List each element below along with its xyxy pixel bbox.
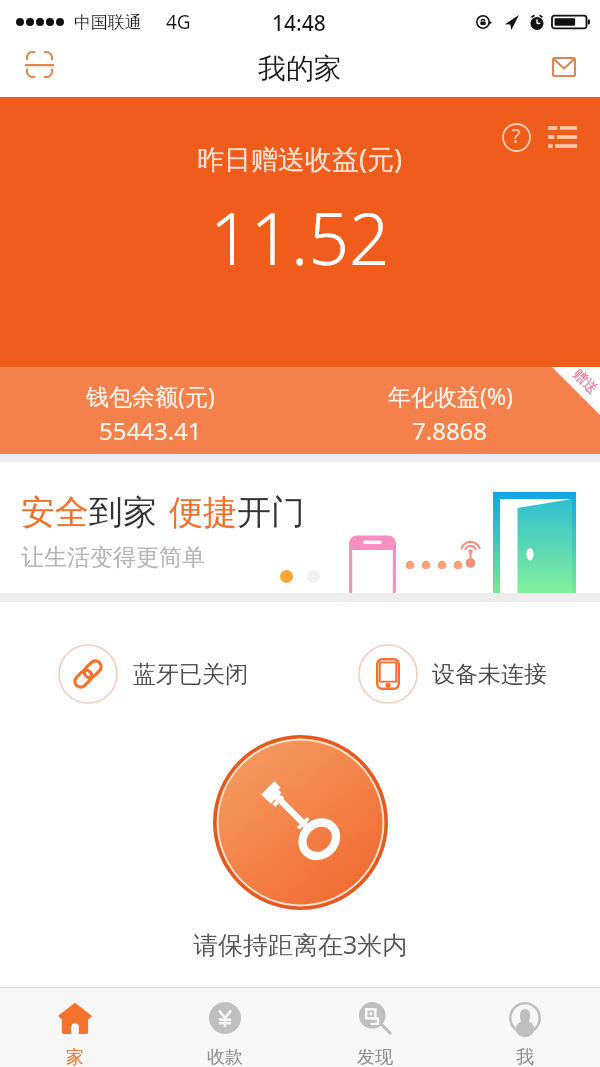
staticText: 中国联通	[74, 12, 142, 33]
staticText: 钱包余额(元)	[86, 380, 215, 411]
staticText: ?	[512, 123, 521, 149]
staticText: 设备未连接	[432, 660, 547, 689]
button[interactable]: 收款	[150, 988, 300, 1067]
staticText: 让生活变得更简单	[21, 543, 205, 572]
button[interactable]: Menu	[541, 116, 583, 158]
staticText: 便捷	[169, 491, 237, 534]
staticText: 发现	[357, 1046, 393, 1067]
staticText: 收款	[207, 1046, 243, 1067]
staticText: 7.8868	[412, 414, 488, 447]
button[interactable]: 我	[450, 988, 600, 1067]
button[interactable]: 家	[0, 988, 150, 1067]
staticText: 55443.41	[99, 414, 202, 447]
staticText: 赠送	[569, 366, 600, 398]
button[interactable]: 设备未连接	[358, 644, 600, 704]
staticText: 11.52	[210, 189, 390, 286]
staticText: 4G	[166, 9, 191, 35]
staticText: 年化收益(%)	[388, 380, 513, 411]
button[interactable]: 蓝牙已关闭	[58, 644, 300, 704]
staticText: 家	[66, 1046, 84, 1067]
staticText: 我的家	[258, 51, 342, 86]
staticText: 我	[516, 1046, 534, 1067]
button[interactable]: Help	[495, 116, 537, 158]
button[interactable]: 发现	[300, 988, 450, 1067]
staticText: 安全	[21, 491, 89, 534]
staticText: 14:48	[272, 9, 326, 38]
staticText: 昨日赠送收益(元)	[197, 140, 403, 177]
staticText: 请保持距离在3米内	[193, 927, 408, 961]
button[interactable]: Unlock door	[213, 735, 388, 910]
staticText: 蓝牙已关闭	[133, 660, 248, 689]
button[interactable]: Messages	[542, 45, 586, 89]
staticText: 到家	[89, 491, 157, 534]
staticText: 开门	[237, 491, 305, 534]
button[interactable]: Scan QR code	[15, 40, 63, 88]
